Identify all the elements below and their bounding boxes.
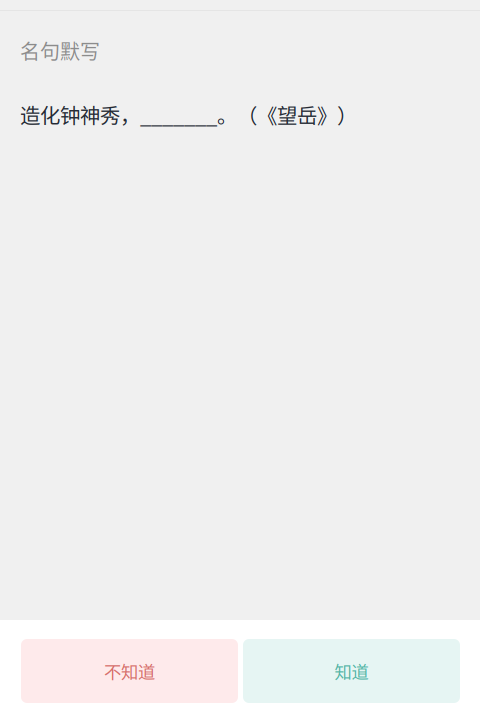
button[interactable]: 不知道 bbox=[21, 639, 238, 703]
button[interactable]: 知道 bbox=[243, 639, 460, 703]
staticText: 知道 bbox=[334, 658, 368, 684]
staticText: 造化钟神秀，_______。（《望岳》） bbox=[20, 100, 357, 129]
staticText: 不知道 bbox=[104, 658, 155, 684]
staticText: 名句默写 bbox=[20, 36, 100, 65]
